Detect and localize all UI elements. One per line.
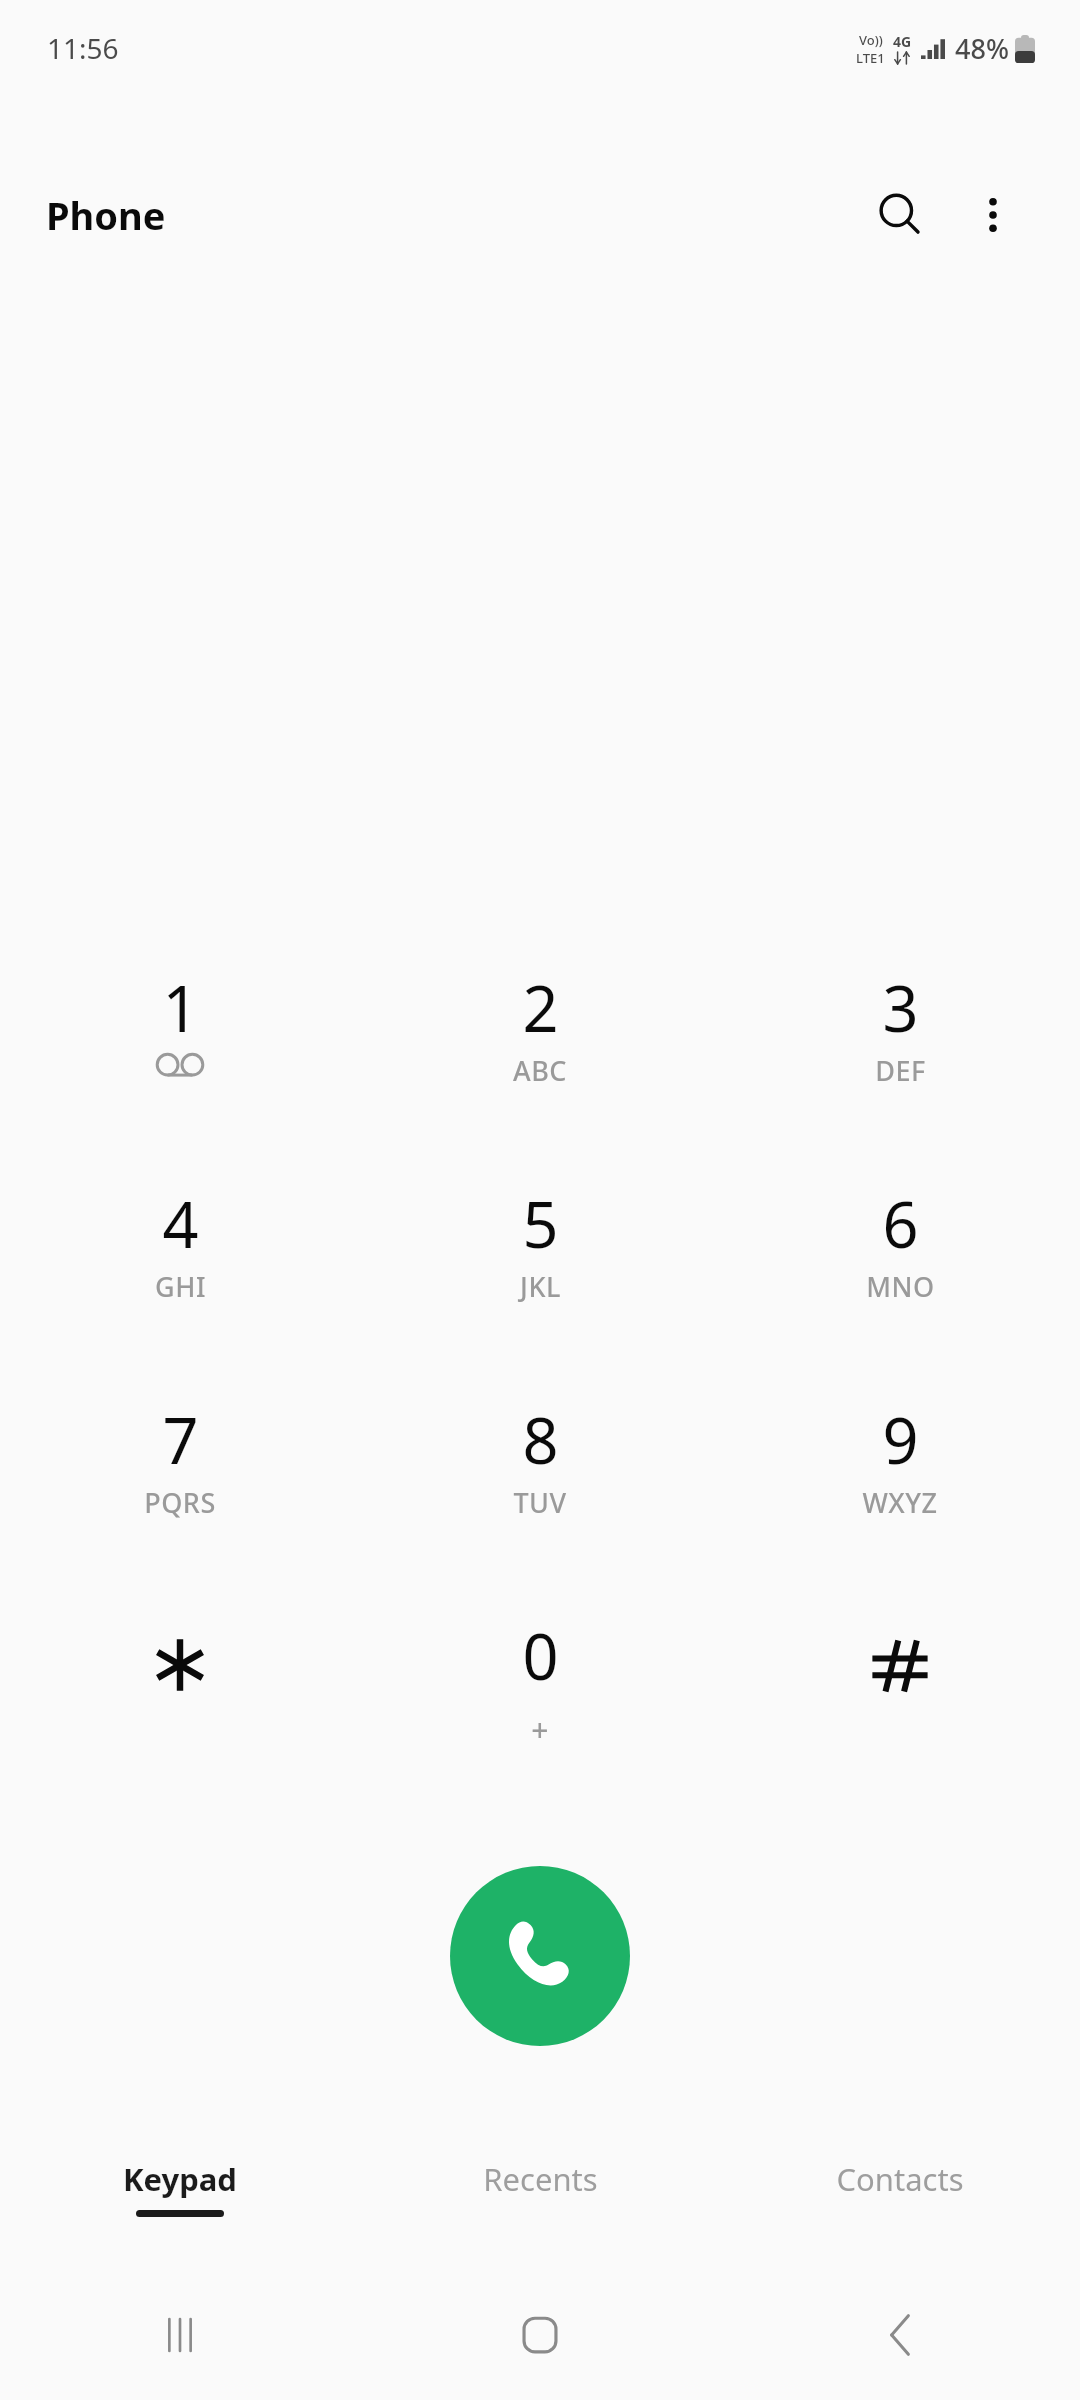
- staticText: ABC: [513, 1052, 567, 1089]
- staticText: DEF: [875, 1052, 926, 1089]
- staticText: 7: [162, 1397, 199, 1483]
- button[interactable]: [0, 1613, 360, 1829]
- button[interactable]: Keypad: [0, 2130, 360, 2240]
- button[interactable]: 1: [0, 965, 360, 1181]
- staticText: PQRS: [144, 1484, 216, 1521]
- staticText: 11:56: [47, 29, 119, 67]
- button[interactable]: [720, 1613, 1080, 1829]
- staticText: WXYZ: [862, 1484, 938, 1521]
- button[interactable]: 0: [360, 1613, 720, 1829]
- staticText: 5: [522, 1181, 559, 1267]
- button[interactable]: Contacts: [720, 2130, 1080, 2240]
- button[interactable]: 6: [720, 1181, 1080, 1397]
- button[interactable]: 5: [360, 1181, 720, 1397]
- staticText: 6: [882, 1181, 919, 1267]
- staticText: 0: [522, 1613, 559, 1699]
- staticText: 48%: [955, 30, 1009, 67]
- staticText: Vo)): [859, 31, 883, 49]
- staticText: Contacts: [836, 2158, 964, 2200]
- staticText: 3: [882, 965, 919, 1051]
- button[interactable]: Search: [852, 167, 948, 263]
- staticText: 4: [162, 1181, 199, 1267]
- staticText: MNO: [866, 1268, 935, 1305]
- button[interactable]: 3: [720, 965, 1080, 1181]
- staticText: JKL: [520, 1268, 561, 1305]
- staticText: 4G: [893, 32, 912, 51]
- button[interactable]: More options: [948, 170, 1038, 260]
- staticText: 1: [162, 965, 199, 1051]
- staticText: Phone: [46, 189, 166, 241]
- staticText: Recents: [483, 2158, 598, 2200]
- button[interactable]: 7: [0, 1397, 360, 1613]
- staticText: +: [531, 1709, 549, 1750]
- staticText: GHI: [155, 1268, 206, 1305]
- button[interactable]: Call: [450, 1866, 630, 2046]
- button[interactable]: 9: [720, 1397, 1080, 1613]
- button[interactable]: Recents: [360, 2130, 720, 2240]
- button[interactable]: 2: [360, 965, 720, 1181]
- button[interactable]: 8: [360, 1397, 720, 1613]
- staticText: LTE1: [856, 49, 885, 67]
- staticText: Keypad: [123, 2158, 237, 2200]
- staticText: TUV: [513, 1484, 567, 1521]
- button[interactable]: Back: [720, 2270, 1080, 2400]
- staticText: 2: [522, 965, 559, 1051]
- staticText: 9: [882, 1397, 919, 1483]
- staticText: 8: [522, 1397, 559, 1483]
- button[interactable]: 4: [0, 1181, 360, 1397]
- button[interactable]: Recent apps: [0, 2270, 360, 2400]
- button[interactable]: Home: [360, 2270, 720, 2400]
